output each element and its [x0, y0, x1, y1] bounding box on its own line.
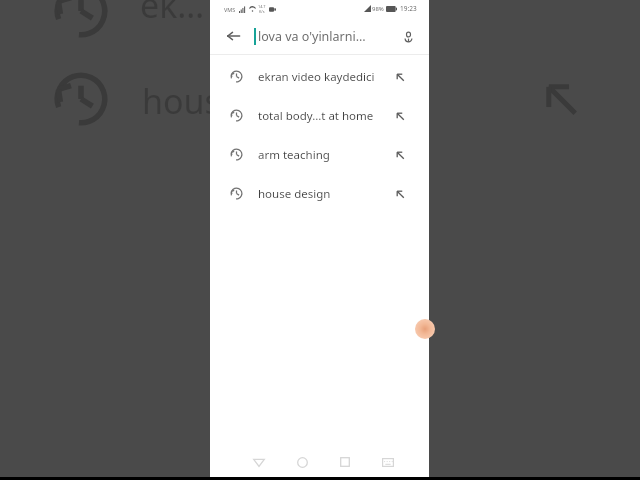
- button[interactable]: Back: [244, 447, 274, 477]
- staticText: arm teaching: [258, 147, 391, 163]
- staticText: VMS: [224, 6, 236, 13]
- button[interactable]: Insert arm teaching: [391, 146, 409, 164]
- staticText: hous: [142, 78, 221, 124]
- button[interactable]: Insert house design: [391, 185, 409, 203]
- button[interactable]: Voice search: [396, 24, 420, 48]
- button[interactable]: Insert ekran video kaydedici: [391, 68, 409, 86]
- staticText: 98%: [372, 5, 384, 13]
- staticText: K/s: [259, 9, 265, 14]
- staticText: 19:23: [400, 4, 417, 13]
- button[interactable]: house design: [210, 174, 429, 213]
- button[interactable]: total body…t at home: [210, 96, 429, 135]
- button[interactable]: Recents: [330, 447, 360, 477]
- staticText: 14.7: [258, 4, 266, 9]
- button[interactable]: lova va o'yinlarni…: [254, 28, 396, 45]
- button[interactable]: Insert total body…t at home: [391, 107, 409, 125]
- staticText: ekran video kaydedici: [258, 69, 391, 85]
- button[interactable]: arm teaching: [210, 135, 429, 174]
- staticText: total body…t at home: [258, 108, 391, 124]
- button[interactable]: ekran video kaydedici: [210, 57, 429, 96]
- button[interactable]: Home: [287, 447, 317, 477]
- staticText: ek…: [140, 0, 205, 28]
- staticText: lova va o'yinlarni…: [258, 28, 366, 45]
- button[interactable]: Keyboard: [373, 447, 403, 477]
- button[interactable]: Back: [220, 23, 246, 49]
- staticText: house design: [258, 186, 391, 202]
